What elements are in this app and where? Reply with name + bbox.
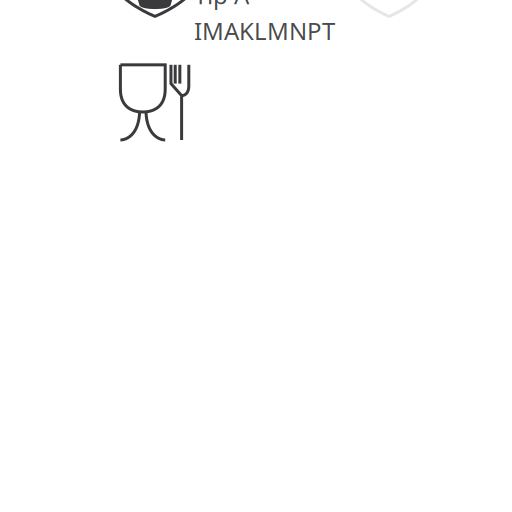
staticText: Tip A: [194, 0, 249, 11]
staticText: IMAKLMNPT: [194, 15, 335, 47]
button[interactable]: Tip A: [0, 0, 512, 56]
